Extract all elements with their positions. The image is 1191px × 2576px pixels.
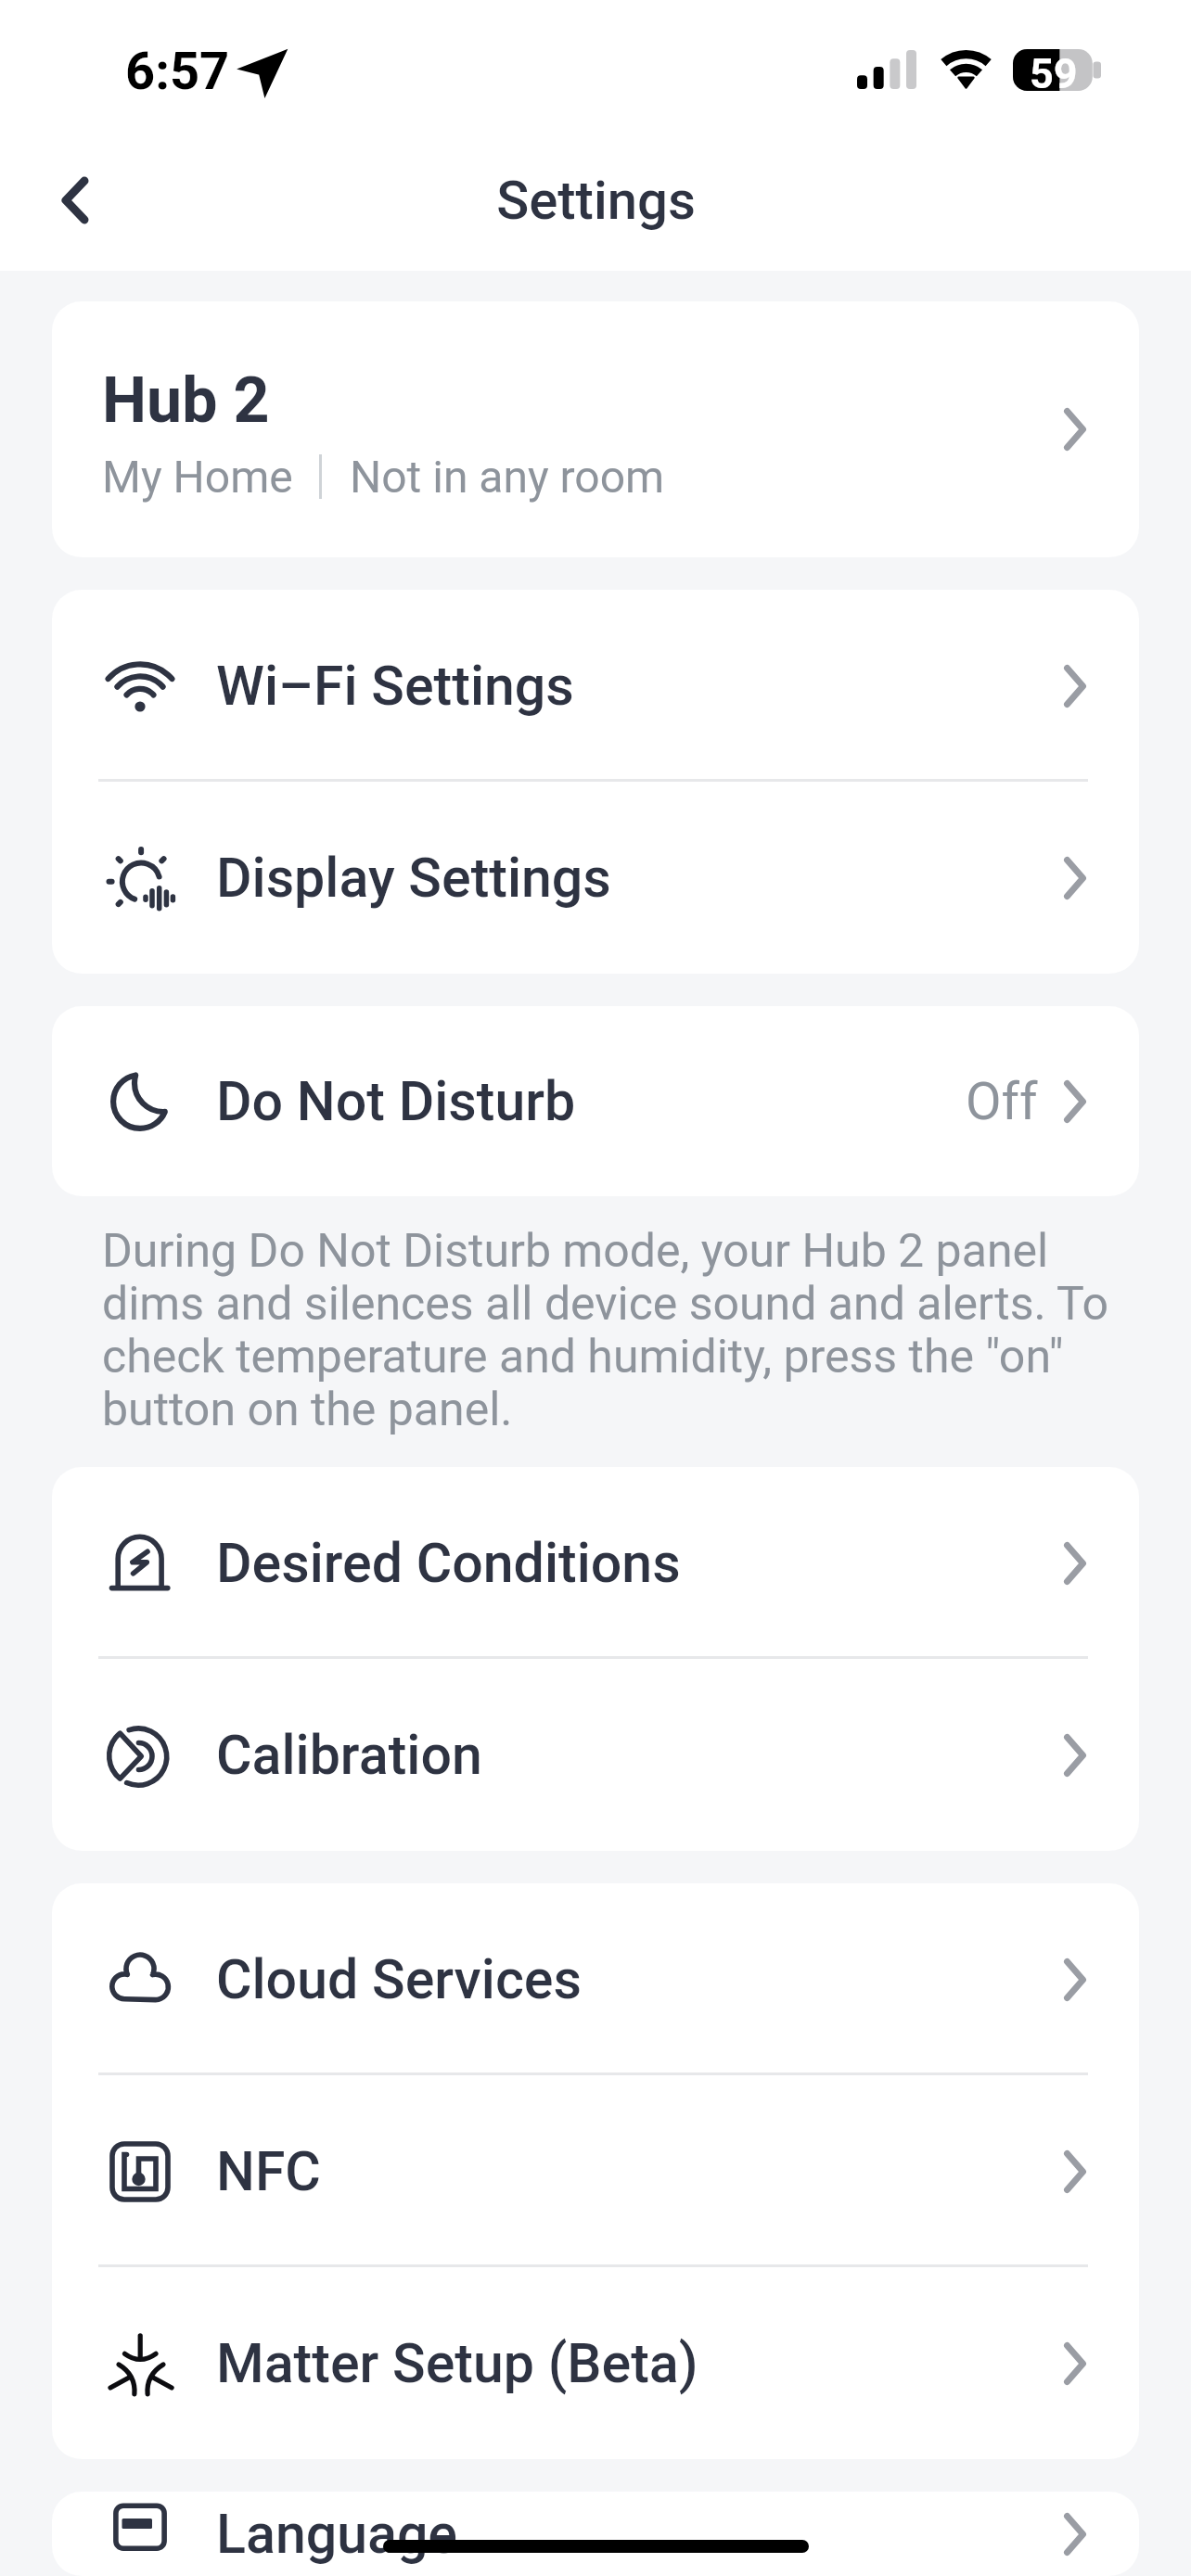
staticText: 6:57: [125, 41, 230, 102]
button[interactable]: NFC: [52, 2075, 1139, 2267]
staticText: My Home: [102, 451, 293, 503]
staticText: Off: [966, 1071, 1038, 1132]
staticText: Wi–Fi Settings: [216, 654, 574, 718]
staticText: Settings: [496, 169, 696, 232]
button[interactable]: Cloud Services: [52, 1883, 1139, 2075]
staticText: 59: [1030, 49, 1078, 91]
staticText: Cloud Services: [216, 1947, 582, 2011]
button[interactable]: Do Not Disturb: [52, 1006, 1139, 1196]
staticText: During Do Not Disturb mode, your Hub 2 p…: [102, 1224, 1118, 1436]
button[interactable]: Display Settings: [52, 782, 1139, 974]
staticText: Matter Setup (Beta): [216, 2331, 698, 2395]
staticText: Calibration: [216, 1723, 482, 1787]
button[interactable]: Language: [52, 2492, 1139, 2576]
button[interactable]: Back: [38, 163, 112, 237]
button[interactable]: Hub 2: [52, 301, 1139, 557]
button[interactable]: Calibration: [52, 1659, 1139, 1851]
button[interactable]: Wi–Fi Settings: [52, 590, 1139, 782]
staticText: Do Not Disturb: [216, 1069, 576, 1133]
staticText: Hub 2: [102, 363, 270, 438]
button[interactable]: Matter Setup (Beta): [52, 2267, 1139, 2459]
staticText: Desired Conditions: [216, 1531, 681, 1595]
button[interactable]: Desired Conditions: [52, 1467, 1139, 1659]
staticText: Display Settings: [216, 846, 611, 910]
staticText: Not in any room: [350, 451, 665, 503]
staticText: Language: [216, 2502, 457, 2566]
staticText: NFC: [216, 2139, 321, 2203]
